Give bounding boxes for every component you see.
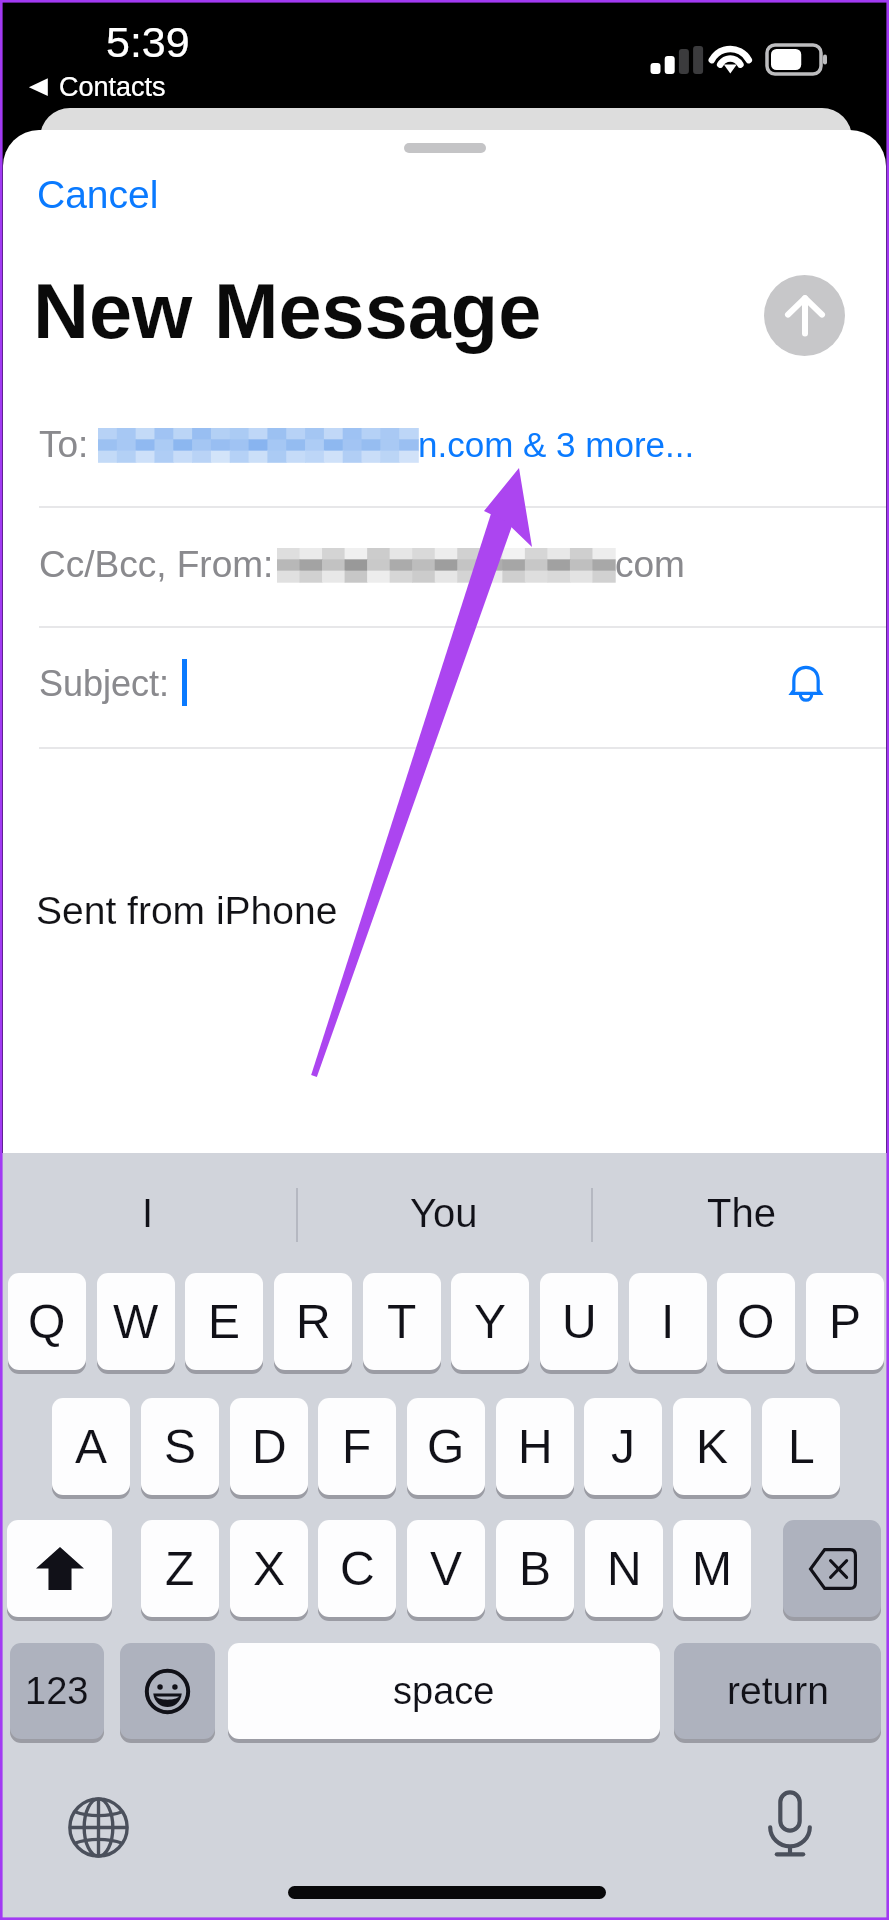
button[interactable]: N [585, 1520, 663, 1617]
button[interactable]: 123 [10, 1643, 104, 1739]
staticText: Z [165, 1542, 195, 1596]
button[interactable]: A [52, 1398, 130, 1495]
staticText: N [607, 1542, 642, 1596]
button[interactable]: Z [141, 1520, 219, 1617]
button[interactable]: Shift [7, 1520, 112, 1617]
button[interactable]: U [540, 1273, 618, 1370]
staticText: L [788, 1420, 815, 1474]
button[interactable]: Emoji [120, 1643, 215, 1739]
staticText: I [661, 1295, 675, 1349]
staticText: Subject: [39, 663, 170, 703]
button[interactable]: J [584, 1398, 662, 1495]
button[interactable]: I [629, 1273, 707, 1370]
button[interactable]: L [762, 1398, 840, 1495]
button[interactable]: H [496, 1398, 574, 1495]
staticText: H [518, 1420, 553, 1474]
button[interactable]: Backspace [783, 1520, 881, 1617]
staticText: com [615, 544, 685, 585]
staticText: P [829, 1295, 862, 1349]
staticText: Cc/Bcc, From: [39, 544, 274, 585]
button[interactable]: Cc/Bcc, From: [3, 503, 886, 626]
button[interactable]: B [496, 1520, 574, 1617]
staticText: A [75, 1420, 108, 1474]
staticText: C [340, 1542, 375, 1596]
button[interactable]: X [230, 1520, 308, 1617]
staticText: T [387, 1295, 417, 1349]
staticText: Sent from iPhone [36, 889, 338, 933]
staticText: space [393, 1670, 495, 1712]
staticText: You [410, 1191, 478, 1236]
button[interactable]: D [230, 1398, 308, 1495]
button[interactable]: Subject: [3, 621, 886, 744]
button[interactable]: M [673, 1520, 751, 1617]
button[interactable]: The [593, 1153, 889, 1273]
staticText: S [164, 1420, 197, 1474]
staticText: K [696, 1420, 729, 1474]
staticText: G [427, 1420, 465, 1474]
staticText: E [208, 1295, 241, 1349]
button[interactable]: Send [764, 275, 845, 356]
staticText: I [142, 1191, 154, 1236]
staticText: Y [474, 1295, 507, 1349]
button[interactable]: Dictate [750, 1784, 830, 1864]
staticText: W [113, 1295, 159, 1349]
staticText: F [342, 1420, 372, 1474]
button[interactable]: To: [3, 383, 886, 506]
button[interactable]: Change keyboard [58, 1787, 138, 1867]
button[interactable]: Sent from iPhone [3, 750, 886, 1154]
button[interactable]: P [806, 1273, 884, 1370]
staticText: 5:39 [106, 18, 190, 66]
button[interactable]: O [717, 1273, 795, 1370]
button[interactable]: Notify me [772, 649, 840, 717]
button[interactable]: return [674, 1643, 881, 1739]
staticText: B [519, 1542, 552, 1596]
staticText: X [253, 1542, 286, 1596]
button[interactable]: R [274, 1273, 352, 1370]
staticText: Q [28, 1295, 66, 1349]
button[interactable]: F [318, 1398, 396, 1495]
button[interactable]: Q [8, 1273, 86, 1370]
staticText: U [562, 1295, 597, 1349]
staticText: 123 [25, 1670, 89, 1712]
staticText: New Message [33, 268, 542, 355]
button[interactable]: You [297, 1153, 591, 1273]
staticText: M [692, 1542, 732, 1596]
button[interactable]: W [97, 1273, 175, 1370]
button[interactable]: C [318, 1520, 396, 1617]
button[interactable]: T [363, 1273, 441, 1370]
button[interactable]: Back to Contacts [28, 71, 157, 103]
staticText: J [611, 1420, 635, 1474]
button[interactable]: K [673, 1398, 751, 1495]
staticText: n.com & 3 more... [418, 425, 695, 464]
staticText: Contacts [59, 72, 166, 102]
staticText: R [296, 1295, 331, 1349]
staticText: To: [39, 424, 89, 465]
staticText: D [252, 1420, 287, 1474]
button[interactable]: Y [451, 1273, 529, 1370]
button[interactable]: G [407, 1398, 485, 1495]
button[interactable]: V [407, 1520, 485, 1617]
staticText: return [727, 1669, 829, 1713]
staticText: O [737, 1295, 775, 1349]
button[interactable]: I [0, 1153, 296, 1273]
staticText: The [707, 1191, 776, 1236]
button[interactable]: E [185, 1273, 263, 1370]
button[interactable]: S [141, 1398, 219, 1495]
button[interactable]: Cancel [17, 161, 179, 229]
staticText: V [430, 1542, 463, 1596]
button[interactable]: space [228, 1643, 660, 1739]
staticText: Cancel [37, 173, 159, 217]
